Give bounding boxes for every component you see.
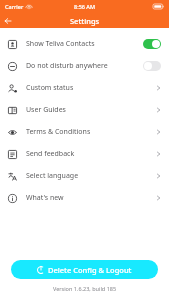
button[interactable]: Send feedback bbox=[0, 143, 169, 165]
staticText: Version 1.6.23, build 185 bbox=[53, 285, 117, 292]
staticText: What's new bbox=[26, 193, 156, 203]
button[interactable]: Terms & Conditions bbox=[0, 121, 169, 143]
button[interactable]: Custom status bbox=[0, 77, 169, 99]
staticText: Show Teliva Contacts bbox=[26, 39, 143, 49]
staticText: Do not disturb anywhere bbox=[26, 61, 143, 71]
staticText: Settings bbox=[70, 16, 100, 26]
button[interactable]: User Guides bbox=[0, 99, 169, 121]
staticText: Select language bbox=[26, 171, 156, 181]
staticText: Carrier bbox=[5, 3, 24, 10]
button[interactable]: Do not disturb anywhere bbox=[0, 55, 169, 77]
button[interactable]: Switch on bbox=[143, 39, 161, 49]
staticText: Custom status bbox=[26, 83, 156, 93]
staticText: User Guides bbox=[26, 105, 156, 115]
staticText: 8:56 AM bbox=[74, 3, 96, 10]
button[interactable]: Switch off bbox=[143, 61, 161, 71]
button[interactable]: Delete Config & Logout bbox=[11, 260, 158, 279]
button[interactable]: Select language bbox=[0, 165, 169, 187]
staticText: Terms & Conditions bbox=[26, 127, 156, 137]
button[interactable]: Back bbox=[0, 13, 15, 28]
staticText: Send feedback bbox=[26, 149, 156, 159]
button[interactable]: What's new bbox=[0, 187, 169, 209]
button[interactable]: Show Teliva Contacts bbox=[0, 33, 169, 55]
staticText: Delete Config & Logout bbox=[48, 265, 132, 275]
